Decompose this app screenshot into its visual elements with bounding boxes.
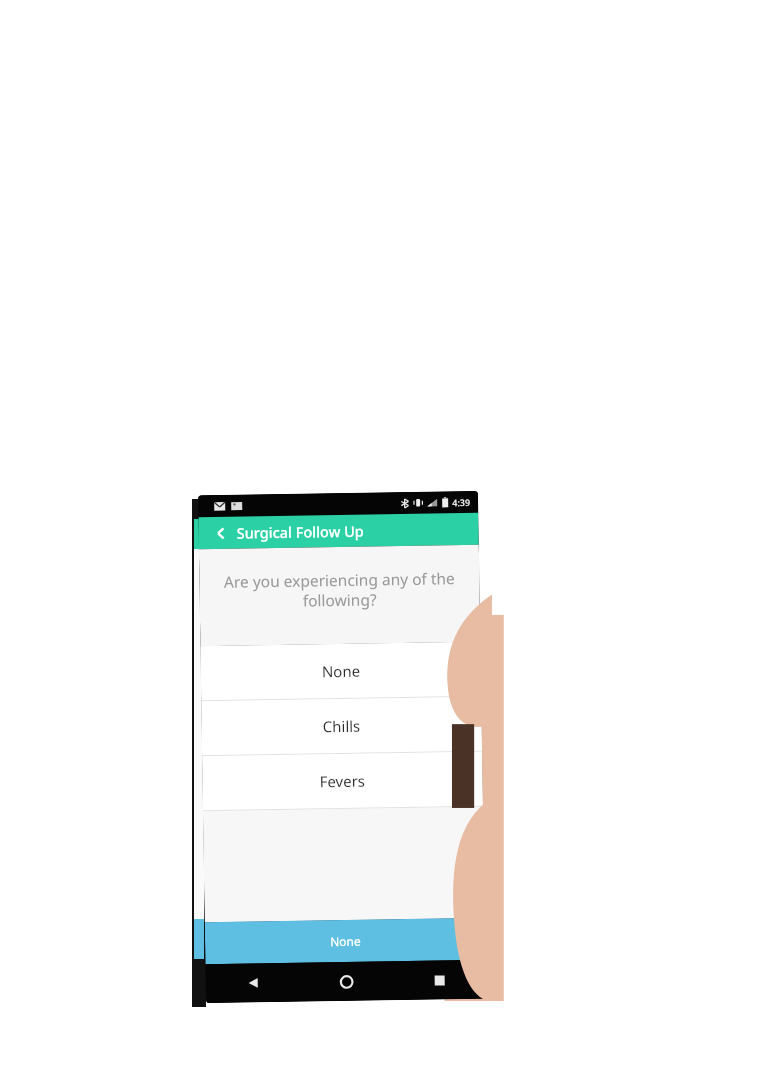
staticText: 4:39: [452, 496, 470, 508]
other: Hand holding phone: [190, 493, 486, 1001]
button[interactable]: Chills: [201, 697, 482, 756]
staticText: None: [330, 933, 361, 949]
staticText: Surgical Follow Up: [236, 521, 365, 543]
button[interactable]: Recent apps: [392, 960, 486, 1000]
staticText: Fevers: [319, 771, 366, 791]
button[interactable]: Home: [299, 961, 393, 1002]
staticText: None: [322, 661, 361, 681]
button[interactable]: Back: [205, 963, 300, 1003]
button[interactable]: None: [205, 918, 485, 964]
button[interactable]: Fevers: [202, 752, 483, 811]
button[interactable]: None: [200, 642, 481, 701]
staticText: Chills: [322, 716, 361, 736]
staticText: Are you experiencing any of the followin…: [217, 567, 462, 613]
button[interactable]: Back: [208, 521, 233, 545]
